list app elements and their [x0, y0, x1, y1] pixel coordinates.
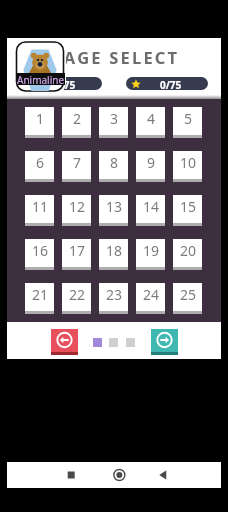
staticText: 20 [180, 241, 197, 260]
button[interactable]: 14 [136, 195, 165, 226]
staticText: 7 [73, 153, 82, 172]
staticText: 22 [69, 285, 86, 304]
button[interactable]: 20 [173, 239, 202, 270]
button[interactable]: 13 [99, 195, 128, 226]
staticText: 9 [147, 153, 156, 172]
staticText: 23 [106, 285, 123, 304]
button[interactable]: 0/75 [20, 77, 102, 90]
staticText: 21 [32, 285, 49, 304]
staticText: STAGE SELECT [42, 46, 180, 68]
button[interactable]: 3 [99, 107, 128, 138]
button[interactable]: Next page [151, 329, 178, 354]
staticText: 17 [69, 241, 86, 260]
button[interactable]: 19 [136, 239, 165, 270]
staticText: 6 [36, 153, 45, 172]
staticText: 19 [143, 241, 160, 260]
button[interactable]: 7 [62, 151, 91, 182]
button[interactable]: 9 [136, 151, 165, 182]
button[interactable]: 8 [99, 151, 128, 182]
staticText: 0/75 [54, 78, 76, 90]
button[interactable]: 21 [25, 283, 54, 314]
staticText: 1 [36, 109, 45, 128]
staticText: 18 [106, 241, 123, 260]
button[interactable]: 0/75 [126, 77, 208, 90]
staticText: 5 [184, 109, 193, 128]
button[interactable]: 24 [136, 283, 165, 314]
staticText: 24 [143, 285, 160, 304]
staticText: 4 [147, 109, 156, 128]
button[interactable]: 16 [25, 239, 54, 270]
button[interactable]: 18 [99, 239, 128, 270]
staticText: 8 [110, 153, 119, 172]
staticText: 25 [180, 285, 197, 304]
button[interactable]: 2 [62, 107, 91, 138]
staticText: Animalines [17, 73, 65, 85]
staticText: 10 [180, 153, 197, 172]
staticText: 16 [32, 241, 49, 260]
staticText: 11 [32, 197, 49, 216]
button[interactable]: 23 [99, 283, 128, 314]
staticText: 12 [69, 197, 86, 216]
button[interactable]: 10 [173, 151, 202, 182]
button[interactable]: 22 [62, 283, 91, 314]
button[interactable]: 25 [173, 283, 202, 314]
staticText: 2 [73, 109, 82, 128]
staticText: 14 [143, 197, 160, 216]
button[interactable]: 15 [173, 195, 202, 226]
button[interactable]: 1 [25, 107, 54, 138]
staticText: 0/75 [160, 78, 182, 90]
staticText: 3 [110, 109, 119, 128]
button[interactable]: 5 [173, 107, 202, 138]
button[interactable]: Previous page [51, 329, 78, 354]
button[interactable]: 4 [136, 107, 165, 138]
button[interactable]: 17 [62, 239, 91, 270]
button[interactable]: 11 [25, 195, 54, 226]
button[interactable]: 6 [25, 151, 54, 182]
staticText: 15 [180, 197, 197, 216]
staticText: 13 [106, 197, 123, 216]
button[interactable]: 12 [62, 195, 91, 226]
